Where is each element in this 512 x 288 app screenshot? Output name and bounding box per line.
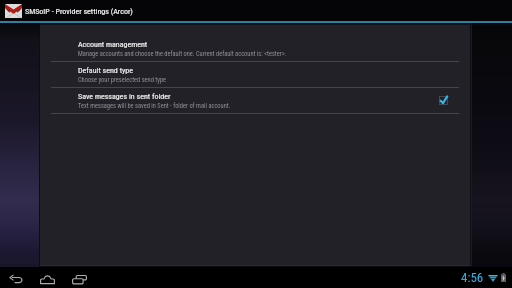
button[interactable]: Account management (40, 36, 470, 61)
other: Home (40, 275, 55, 284)
staticText: Choose your preselected send type (78, 76, 167, 84)
other: Back (9, 275, 23, 284)
other: Recent apps (72, 275, 87, 284)
button[interactable]: Save messages in sent folder (40, 88, 470, 113)
other: Battery (501, 273, 506, 282)
staticText: Account management (78, 40, 148, 49)
staticText: Text messages will be saved in Sent - fo… (78, 102, 231, 110)
staticText: 4:56 (461, 270, 484, 285)
staticText: SMSoIP - Provider settings (Arcor) (25, 7, 133, 16)
other: Wi-Fi (488, 273, 498, 282)
staticText: Manage accounts and choose the default o… (78, 50, 287, 58)
staticText: Default send type (78, 66, 134, 75)
staticText: Save messages in sent folder (78, 92, 171, 101)
button[interactable]: Default send type (40, 62, 470, 87)
